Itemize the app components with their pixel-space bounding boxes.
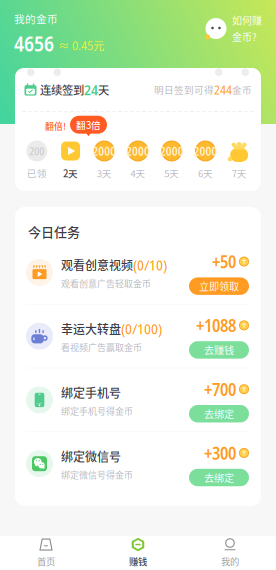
staticText: 看视频广告赢取金币 [61, 341, 142, 353]
staticText: 首页 [37, 554, 55, 568]
button[interactable]: 赚钱 [92, 536, 184, 570]
staticText: 绑定手机号 [61, 384, 121, 401]
staticText: (0/10) [133, 255, 167, 275]
staticText: 2000 [92, 143, 116, 159]
staticText: 如何赚 [232, 13, 262, 27]
staticText: 4656 [14, 29, 54, 57]
staticText: 今日任务 [28, 222, 80, 241]
button[interactable]: 2天 [54, 140, 87, 180]
staticText: 我的 [221, 554, 239, 568]
staticText: 2000 [193, 143, 217, 159]
staticText: 绑定微信号 [61, 448, 121, 465]
staticText: 连续签到 [37, 81, 84, 98]
button[interactable]: 去绑定 [189, 405, 249, 422]
staticText: 5天 [164, 166, 179, 180]
staticText: +700 [204, 377, 236, 401]
staticText: 立即领取 [199, 279, 239, 293]
staticText: 6天 [198, 166, 213, 180]
staticText: 幸运大转盘 [61, 320, 121, 337]
staticText: 观看创意广告轻取金币 [61, 277, 151, 290]
button[interactable]: 去绑定 [189, 469, 249, 486]
staticText: 244 [214, 81, 232, 98]
staticText: (0/100) [121, 319, 162, 339]
staticText: 绑定微信号得金币 [61, 468, 133, 481]
button[interactable]: 7天 [222, 140, 256, 180]
staticText: 天 [98, 81, 109, 98]
staticText: 绑定手机号得金币 [61, 404, 133, 417]
button[interactable]: 200 [20, 140, 54, 180]
staticText: 去赚钱 [204, 343, 234, 357]
staticText: ≈ 0.45元 [58, 37, 104, 54]
button[interactable]: 2000 [155, 140, 189, 180]
staticText: 2000 [126, 143, 150, 159]
staticText: 7天 [232, 166, 247, 180]
staticText: 明日签到可得 [154, 82, 214, 96]
button[interactable]: 去赚钱 [189, 341, 249, 359]
staticText: +50 [212, 250, 236, 273]
button[interactable]: 2000 [87, 140, 121, 180]
button[interactable]: 我的 [184, 536, 276, 570]
staticText: 翻3倍 [76, 118, 101, 132]
staticText: 我的金币 [14, 11, 58, 26]
staticText: 2000 [160, 143, 184, 159]
button[interactable]: 如何赚金币 [205, 11, 262, 44]
staticText: 金币 [232, 82, 252, 96]
staticText: 观看创意视频 [61, 256, 133, 274]
staticText: 200 [29, 144, 44, 158]
button[interactable]: 立即领取 [189, 277, 249, 295]
staticText: 已领 [27, 166, 47, 180]
button[interactable]: 2000 [121, 140, 155, 180]
staticText: 24 [84, 79, 98, 99]
staticText: 4天 [130, 166, 145, 180]
staticText: +300 [204, 441, 236, 465]
staticText: 金币? [232, 29, 257, 44]
staticText: 3天 [97, 166, 112, 180]
staticText: 去绑定 [204, 406, 234, 421]
button[interactable]: 首页 [0, 536, 92, 570]
staticText: 赚钱 [129, 554, 147, 568]
staticText: 2天 [63, 166, 78, 180]
staticText: +1088 [196, 314, 236, 337]
staticText: 翻倍! [45, 120, 66, 132]
button[interactable]: 2000 [189, 140, 222, 180]
staticText: 去绑定 [204, 470, 234, 485]
